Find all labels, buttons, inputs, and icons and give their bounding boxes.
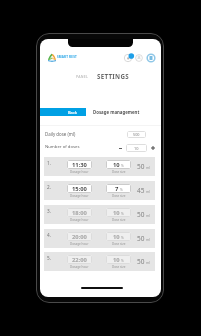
staticText: 18:00 [72,209,87,217]
button[interactable]: Menu [145,52,157,64]
staticText: ml [146,213,151,218]
staticText: % [121,211,124,216]
staticText: % [121,258,124,263]
staticText: Dosage hour [70,218,89,222]
staticText: SMART REST [57,55,77,59]
staticText: 10 [113,209,120,217]
staticText: 10 [134,146,139,151]
staticText: Dose size [112,194,126,198]
button[interactable]: 3. [44,205,155,224]
staticText: 45 [137,186,145,195]
staticText: ml [146,237,151,242]
staticText: Dosage hour [70,265,89,269]
staticText: ml [146,260,151,265]
staticText: Back [68,110,78,115]
button[interactable]: Decrease [116,144,124,152]
staticText: PANEL [76,74,89,79]
staticText: Dosage management [93,109,140,115]
staticText: 2. [47,184,51,189]
staticText: 50 [137,210,145,219]
staticText: Daily dose (ml) [45,131,76,137]
staticText: 5. [47,255,51,260]
staticText: 22:00 [72,256,87,264]
staticText: 11:30 [72,161,87,169]
staticText: % [121,235,124,240]
button[interactable]: 4. [44,229,155,248]
staticText: ml [146,189,151,194]
staticText: 10 [113,161,120,169]
button[interactable]: 2. [44,181,155,200]
staticText: 3. [47,208,51,213]
staticText: 7 [115,185,119,193]
button[interactable]: Increase [149,144,157,152]
staticText: 20:00 [72,233,87,241]
staticText: 15:00 [72,185,87,193]
staticText: 500 [133,132,140,137]
staticText: Dose size [112,242,126,246]
staticText: 50 [137,234,145,243]
staticText: % [120,187,123,192]
staticText: Dose size [112,170,126,174]
staticText: SETTINGS [97,72,129,80]
staticText: 10 [113,233,120,241]
staticText: ml [146,165,151,170]
staticText: 1. [47,160,51,165]
button[interactable]: Back [40,108,86,116]
button[interactable]: 500 [127,131,146,138]
staticText: Dosage hour [70,194,89,198]
button[interactable]: Dosage management [86,108,161,116]
button[interactable]: 5. [44,252,155,271]
staticText: 50 [137,162,145,171]
staticText: 50 [137,257,145,266]
staticText: 10 [113,256,120,264]
button[interactable]: Notifications [122,52,134,64]
staticText: Dosage hour [70,242,89,246]
staticText: 4. [47,232,51,237]
staticText: Dose size [112,265,126,269]
staticText: Dosage hour [70,170,89,174]
staticText: % [121,163,124,168]
button[interactable]: 1. [44,157,155,176]
staticText: Dose size [112,218,126,222]
button[interactable]: PANEL [70,73,94,80]
staticText: Number of doses [45,143,80,149]
button[interactable]: 10 [126,144,147,152]
button[interactable]: Account [133,52,145,64]
